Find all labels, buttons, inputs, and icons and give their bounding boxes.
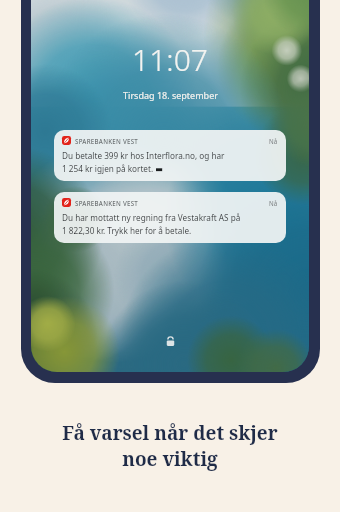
staticText: 1 254 kr igjen på kortet. ▬ bbox=[62, 163, 163, 174]
staticText: noe viktig bbox=[122, 446, 218, 472]
button[interactable]: Låst bbox=[161, 332, 179, 350]
staticText: Nå bbox=[269, 199, 278, 207]
staticText: Tirsdag 18. september bbox=[123, 89, 218, 101]
staticText: Nå bbox=[269, 137, 278, 145]
staticText: Du har mottatt ny regning fra Vestakraft… bbox=[62, 212, 241, 223]
staticText: Få varsel når det skjer bbox=[62, 420, 278, 446]
staticText: SPAREBANKEN VEST bbox=[75, 199, 269, 207]
staticText: 11:07 bbox=[132, 39, 208, 80]
button[interactable]: SPAREBANKEN VEST bbox=[54, 192, 286, 243]
staticText: 1 822,30 kr. Trykk her for å betale. bbox=[62, 225, 192, 236]
staticText: Du betalte 399 kr hos Interflora.no, og … bbox=[62, 150, 225, 161]
button[interactable]: SPAREBANKEN VEST bbox=[54, 130, 286, 181]
staticText: SPAREBANKEN VEST bbox=[75, 137, 269, 145]
